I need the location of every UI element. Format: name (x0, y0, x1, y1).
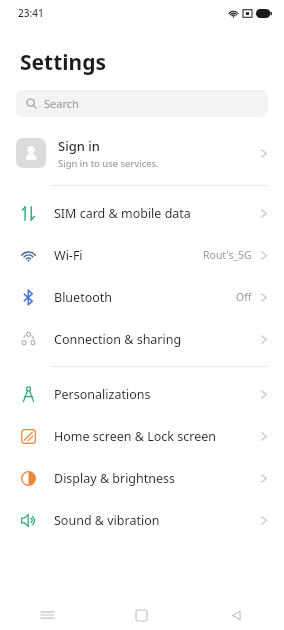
button[interactable]: Wi-Fi (0, 234, 284, 276)
staticText: Display & brightness (54, 470, 176, 487)
staticText: Search (44, 96, 79, 111)
staticText: Settings (20, 48, 107, 77)
staticText: Bluetooth (54, 289, 113, 306)
button[interactable]: Bluetooth (0, 276, 284, 318)
button[interactable]: Sound & vibration (0, 499, 284, 541)
button[interactable]: Connection & sharing (0, 318, 284, 360)
button[interactable]: Display & brightness (0, 457, 284, 499)
button[interactable]: Home (94, 600, 189, 630)
button[interactable]: Back (189, 600, 284, 630)
staticText: Home screen & Lock screen (54, 428, 216, 445)
button[interactable]: Personalizations (0, 373, 284, 415)
staticText: 23:41 (18, 6, 44, 20)
staticText: Off (236, 290, 252, 304)
staticText: SIM card & mobile data (54, 205, 191, 222)
staticText: Wi-Fi (54, 247, 83, 264)
button[interactable]: Sign in (0, 129, 284, 177)
staticText: Sound & vibration (54, 512, 160, 529)
staticText: Connection & sharing (54, 331, 182, 348)
button[interactable]: Recents (0, 600, 94, 630)
button[interactable]: Home screen & Lock screen (0, 415, 284, 457)
staticText: Sign in to use services. (58, 157, 159, 170)
button[interactable]: Search (16, 90, 268, 117)
staticText: Personalizations (54, 386, 151, 403)
button[interactable]: SIM card & mobile data (0, 192, 284, 234)
staticText: Sign in (58, 137, 100, 155)
staticText: Rout's_5G (203, 248, 252, 262)
